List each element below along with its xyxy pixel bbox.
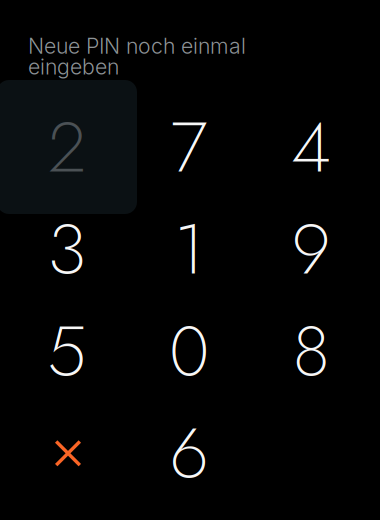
staticText: 7 xyxy=(170,96,207,198)
staticText: 6 xyxy=(169,402,208,504)
staticText: Neue PIN noch einmal xyxy=(28,33,246,59)
staticText: eingeben xyxy=(28,54,119,80)
button[interactable]: 6 xyxy=(128,402,250,504)
button[interactable]: 9 xyxy=(250,198,372,300)
staticText: 3 xyxy=(47,198,86,300)
button[interactable]: 2 xyxy=(6,96,128,198)
staticText: 8 xyxy=(292,300,329,402)
staticText: 4 xyxy=(291,96,331,198)
staticText: 0 xyxy=(169,300,209,402)
staticText: 9 xyxy=(291,198,330,300)
button[interactable]: 3 xyxy=(6,198,128,300)
button[interactable]: Löschen xyxy=(6,402,128,504)
button[interactable]: 1 xyxy=(128,198,250,300)
button[interactable]: 5 xyxy=(6,300,128,402)
button[interactable]: 4 xyxy=(250,96,372,198)
staticText: 2 xyxy=(48,96,86,198)
button[interactable]: 8 xyxy=(250,300,372,402)
button[interactable]: 0 xyxy=(128,300,250,402)
button[interactable]: 7 xyxy=(128,96,250,198)
staticText: 1 xyxy=(174,198,204,300)
staticText: 5 xyxy=(47,300,87,402)
